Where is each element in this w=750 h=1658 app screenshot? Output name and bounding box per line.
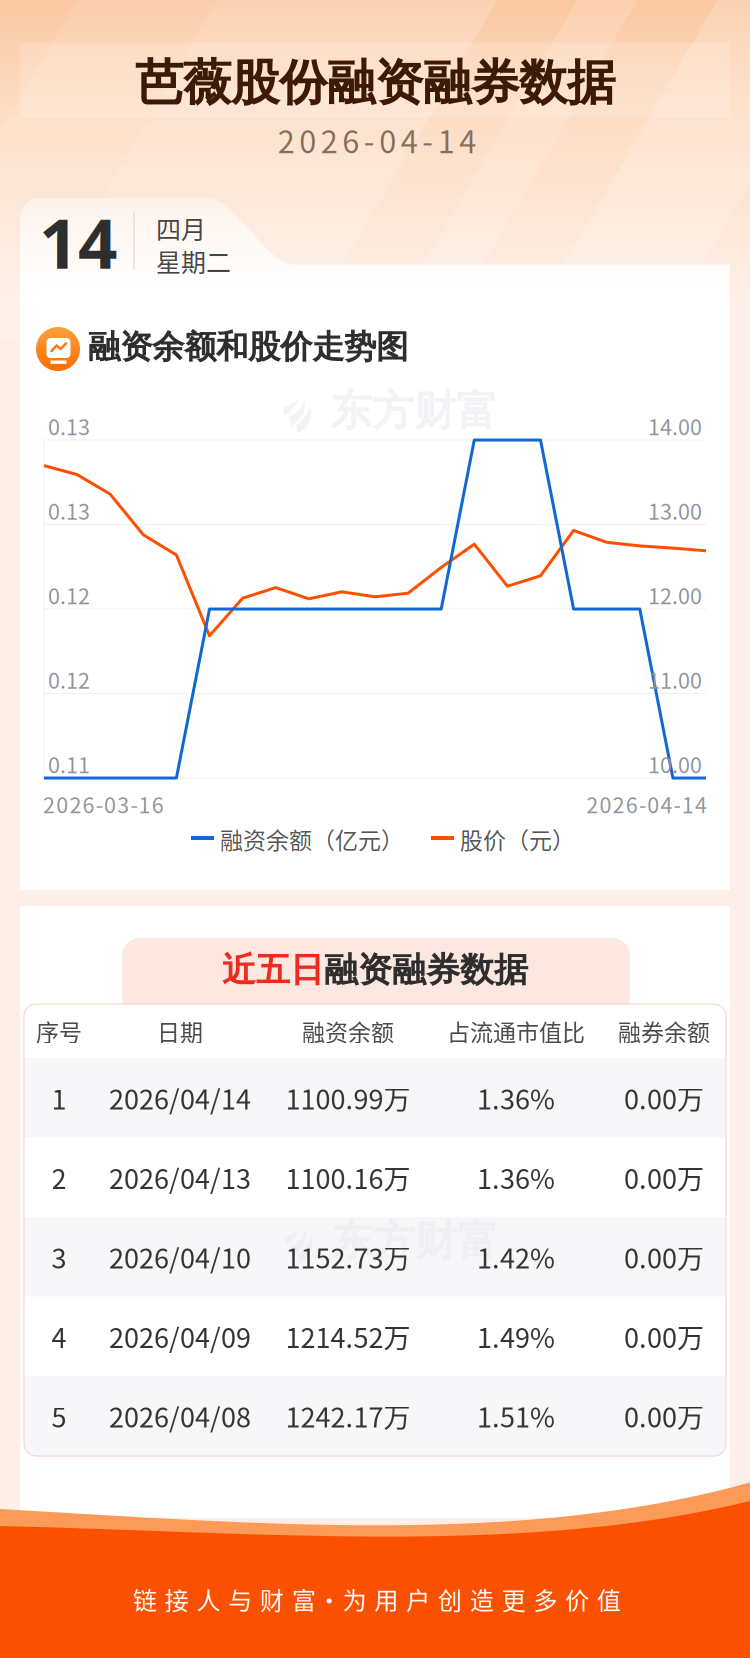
staticText: 值 xyxy=(597,1582,621,1616)
staticText: 1.36% xyxy=(477,1078,555,1117)
staticText: 5 xyxy=(51,1396,66,1435)
staticText: 人 xyxy=(196,1582,220,1616)
staticText: 0.00万 xyxy=(624,1158,704,1197)
staticText: 0.12 xyxy=(48,579,90,610)
staticText: 0.00万 xyxy=(624,1237,704,1276)
staticText: 2026/04/09 xyxy=(109,1317,251,1356)
staticText: 富 xyxy=(292,1582,316,1616)
staticText: 0 xyxy=(379,118,396,162)
staticText: 多 xyxy=(533,1582,557,1616)
staticText: 1 xyxy=(51,1078,66,1117)
staticText: 4 xyxy=(459,118,476,162)
staticText: 日期 xyxy=(157,1014,203,1048)
staticText: 0.13 xyxy=(48,495,90,526)
staticText: 13.00 xyxy=(648,495,702,526)
staticText: 10.00 xyxy=(648,748,702,779)
staticText: 1100.16万 xyxy=(285,1158,410,1197)
staticText: 创 xyxy=(438,1582,462,1616)
staticText: 接 xyxy=(165,1582,189,1616)
staticText: 为 xyxy=(343,1582,367,1616)
staticText: 2 xyxy=(613,788,625,820)
staticText: 融资余额和股价走势图 xyxy=(88,327,408,367)
staticText: 序号 xyxy=(36,1014,82,1048)
staticText: 1100.99万 xyxy=(285,1078,410,1117)
staticText: 造 xyxy=(470,1582,494,1616)
staticText: 用 xyxy=(374,1582,398,1616)
staticText: - xyxy=(674,788,681,820)
staticText: 0.00万 xyxy=(624,1396,704,1435)
staticText: 1.49% xyxy=(477,1317,555,1356)
staticText: 4 xyxy=(401,118,418,162)
staticText: 12.00 xyxy=(648,579,702,610)
staticText: 与 xyxy=(228,1582,252,1616)
staticText: 0 xyxy=(647,788,659,820)
staticText: 2026/04/08 xyxy=(109,1396,251,1435)
staticText: 4 xyxy=(51,1317,66,1356)
staticText: 0.11 xyxy=(48,748,90,779)
staticText: 0 xyxy=(599,788,611,820)
staticText: 户 xyxy=(406,1582,430,1616)
staticText: 近五日 xyxy=(222,949,324,991)
staticText: 0.13 xyxy=(48,410,90,441)
staticText: 6 xyxy=(342,118,359,162)
staticText: - xyxy=(130,788,137,820)
staticText: 四月 xyxy=(156,210,206,246)
staticText: 价 xyxy=(565,1582,589,1616)
staticText: 4 xyxy=(695,788,707,820)
staticText: 东方财富 xyxy=(330,384,498,437)
staticText: 1.51% xyxy=(477,1396,555,1435)
staticText: 融资余额 xyxy=(302,1014,394,1048)
staticText: 1 xyxy=(682,788,694,820)
staticText: 1214.52万 xyxy=(285,1317,410,1356)
staticText: 0.12 xyxy=(48,664,90,695)
staticText: 财 xyxy=(260,1582,284,1616)
staticText: 3 xyxy=(51,1237,66,1276)
staticText: 星期二 xyxy=(156,243,231,279)
staticText: 股价（元） xyxy=(460,822,575,856)
staticText: · xyxy=(317,1582,341,1616)
staticText: 11.00 xyxy=(648,664,702,695)
staticText: 1 xyxy=(438,118,455,162)
staticText: 融券余额 xyxy=(618,1014,710,1048)
staticText: 1.36% xyxy=(477,1158,555,1197)
staticText: 1 xyxy=(139,788,151,820)
staticText: 0 xyxy=(299,118,316,162)
staticText: - xyxy=(639,788,646,820)
staticText: 6 xyxy=(83,788,95,820)
staticText: 2026/04/10 xyxy=(109,1237,251,1276)
staticText: 融资余额（亿元） xyxy=(220,822,404,856)
staticText: - xyxy=(364,118,375,162)
staticText: 融资融券数据 xyxy=(324,949,528,991)
staticText: 0 xyxy=(104,788,116,820)
staticText: 6 xyxy=(626,788,638,820)
staticText: 2 xyxy=(43,788,55,820)
staticText: 2026/04/13 xyxy=(109,1158,251,1197)
staticText: 0 xyxy=(56,788,68,820)
staticText: 6 xyxy=(152,788,164,820)
staticText: - xyxy=(96,788,103,820)
staticText: 1242.17万 xyxy=(285,1396,410,1435)
staticText: 14 xyxy=(39,195,117,289)
staticText: 2 xyxy=(586,788,598,820)
staticText: 1.42% xyxy=(477,1237,555,1276)
staticText: 2 xyxy=(69,788,81,820)
staticText: - xyxy=(422,118,433,162)
staticText: 链 xyxy=(133,1582,157,1616)
staticText: 1152.73万 xyxy=(285,1237,410,1276)
staticText: 0.00万 xyxy=(624,1317,704,1356)
staticText: 2026/04/14 xyxy=(109,1078,251,1117)
staticText: 14.00 xyxy=(648,410,702,441)
staticText: 2 xyxy=(51,1158,66,1197)
staticText: 更 xyxy=(502,1582,526,1616)
staticText: 4 xyxy=(660,788,672,820)
staticText: 2 xyxy=(321,118,338,162)
staticText: 占流通市值比 xyxy=(447,1014,585,1048)
staticText: 芭薇股份融资融券数据 xyxy=(135,52,615,113)
staticText: 东方财富 xyxy=(331,1214,499,1267)
staticText: 2 xyxy=(278,118,295,162)
staticText: 0.00万 xyxy=(624,1078,704,1117)
staticText: 3 xyxy=(117,788,129,820)
